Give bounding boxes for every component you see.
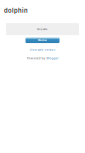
staticText: View web version bbox=[29, 48, 55, 51]
button[interactable]: Blogger bbox=[46, 56, 58, 60]
button[interactable]: View web version bbox=[29, 48, 55, 51]
staticText: Blogger bbox=[46, 56, 58, 60]
staticText: No posts. bbox=[37, 28, 48, 30]
button[interactable]: Home bbox=[25, 37, 59, 43]
staticText: Home bbox=[38, 38, 47, 42]
staticText: dolphin bbox=[4, 7, 28, 14]
staticText: Powered by bbox=[26, 56, 45, 60]
